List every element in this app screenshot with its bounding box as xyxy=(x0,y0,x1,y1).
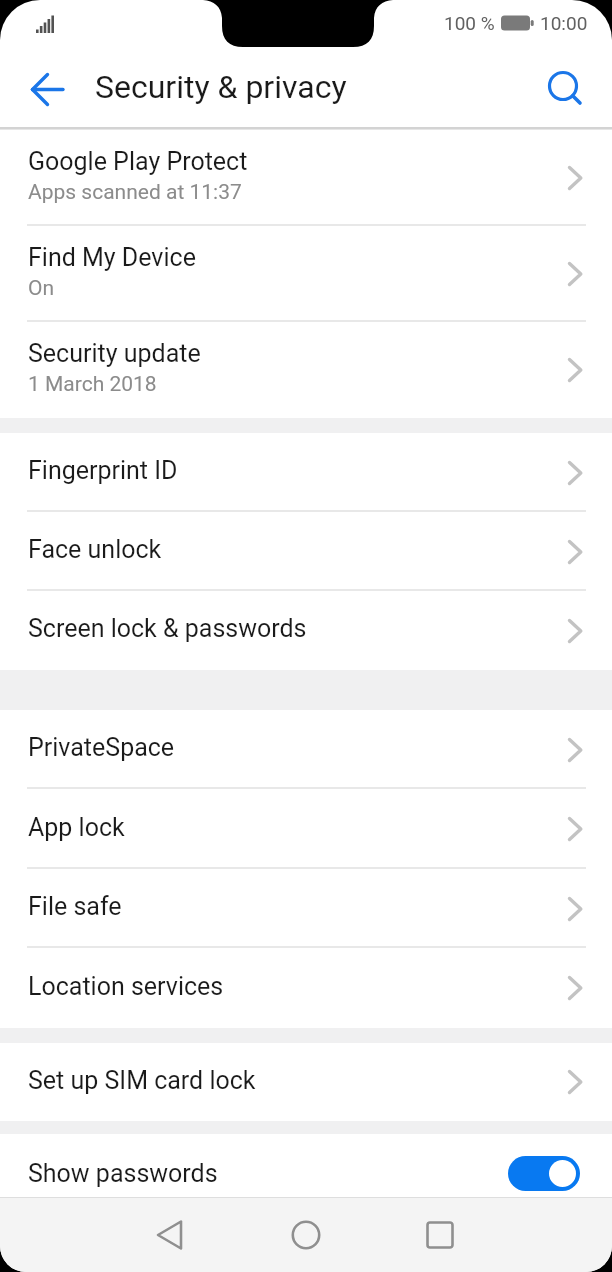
staticText: Show passwords xyxy=(28,1159,218,1188)
button[interactable]: Google Play Protect xyxy=(0,130,612,226)
staticText: Security update xyxy=(28,339,201,368)
staticText: Apps scanned at 11:37 xyxy=(28,180,242,205)
staticText: Fingerprint ID xyxy=(28,456,178,485)
staticText: File safe xyxy=(28,892,122,921)
button[interactable]: Find My Device xyxy=(0,226,612,322)
button[interactable] xyxy=(508,1156,580,1191)
button[interactable]: File safe xyxy=(0,869,612,948)
staticText: 10:00 xyxy=(540,12,588,34)
button[interactable]: Screen lock & passwords xyxy=(0,591,612,670)
staticText: Screen lock & passwords xyxy=(28,614,307,643)
button[interactable]: Security update xyxy=(0,322,612,418)
staticText: App lock xyxy=(28,813,125,842)
button[interactable]: Show passwords xyxy=(0,1134,612,1197)
staticText: On xyxy=(28,276,55,301)
button[interactable]: Face unlock xyxy=(0,512,612,591)
button[interactable]: PrivateSpace xyxy=(0,710,612,789)
button[interactable] xyxy=(425,1220,455,1250)
staticText: PrivateSpace xyxy=(28,733,175,762)
staticText: 100 % xyxy=(444,12,495,34)
staticText: Location services xyxy=(28,972,224,1001)
staticText: Google Play Protect xyxy=(28,147,248,176)
button[interactable]: Set up SIM card lock xyxy=(0,1043,612,1121)
staticText: Face unlock xyxy=(28,535,162,564)
button[interactable]: App lock xyxy=(0,789,612,869)
staticText: Security & privacy xyxy=(95,68,347,106)
button[interactable] xyxy=(26,67,66,107)
button[interactable] xyxy=(155,1220,185,1250)
staticText: Set up SIM card lock xyxy=(28,1066,256,1095)
staticText: 1 March 2018 xyxy=(28,372,157,397)
button[interactable] xyxy=(543,66,584,107)
staticText: Find My Device xyxy=(28,243,196,272)
button[interactable] xyxy=(291,1220,321,1250)
button[interactable]: Location services xyxy=(0,948,612,1028)
button[interactable]: Fingerprint ID xyxy=(0,433,612,512)
